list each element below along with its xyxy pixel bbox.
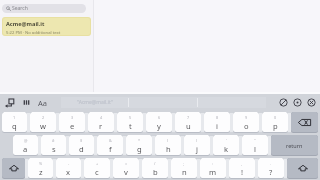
staticText: Aa: [38, 98, 47, 108]
staticText: /: [154, 161, 156, 166]
button[interactable]: return: [271, 135, 318, 155]
button[interactable]: $: [69, 135, 94, 155]
staticText: y: [157, 121, 161, 131]
staticText: +: [96, 161, 99, 166]
staticText: $: [80, 138, 83, 143]
button[interactable]: -: [56, 158, 81, 178]
staticText: 9: [245, 115, 248, 120]
button[interactable]: Dismiss keyboard: [306, 97, 317, 108]
button[interactable]: 0: [262, 112, 288, 132]
staticText: "Acme@mail.it": [77, 99, 113, 106]
button[interactable]: @: [13, 135, 38, 155]
staticText: 8: [216, 115, 219, 120]
button[interactable]: .: [258, 158, 284, 178]
button[interactable]: "Acme@mail.it": [61, 97, 128, 108]
staticText: p: [273, 121, 278, 131]
staticText: b: [153, 167, 158, 177]
button[interactable]: Hide toolbar: [278, 97, 289, 108]
button[interactable]: Settings: [292, 97, 303, 108]
button[interactable]: Shift: [2, 158, 25, 178]
button[interactable]: *: [126, 135, 152, 155]
staticText: ': [226, 138, 227, 143]
staticText: 5:22 PM · No additional text: [6, 30, 61, 36]
staticText: 6: [158, 115, 161, 120]
staticText: j: [196, 144, 198, 154]
staticText: 3: [71, 115, 74, 120]
button[interactable]: 9: [233, 112, 259, 132]
button[interactable]: :: [200, 158, 226, 178]
staticText: s: [52, 144, 56, 154]
staticText: 2: [42, 115, 45, 120]
button[interactable]: Search: [2, 4, 86, 13]
staticText: f: [109, 144, 112, 154]
staticText: return: [286, 142, 303, 149]
staticText: 5: [129, 115, 132, 120]
staticText: @: [24, 138, 28, 143]
button[interactable]: #: [41, 135, 66, 155]
staticText: o: [244, 121, 249, 131]
staticText: ;: [183, 161, 185, 166]
button[interactable]: Text formatting: [36, 97, 48, 109]
button[interactable]: /: [142, 158, 168, 178]
button[interactable]: Acme@mail.it: [2, 17, 91, 36]
staticText: x: [66, 167, 71, 177]
staticText: *: [138, 138, 141, 143]
staticText: i: [216, 121, 218, 131]
staticText: w: [40, 121, 46, 131]
staticText: %: [39, 161, 43, 166]
staticText: (: [167, 138, 169, 143]
button[interactable]: +: [84, 158, 110, 178]
staticText: g: [137, 144, 142, 154]
staticText: q: [12, 121, 17, 131]
staticText: k: [224, 144, 229, 154]
button[interactable]: ,: [229, 158, 255, 178]
staticText: ?: [269, 167, 273, 177]
staticText: l: [254, 144, 256, 154]
button[interactable]: 4: [88, 112, 114, 132]
button[interactable]: Paragraph style: [21, 97, 32, 108]
button[interactable]: 7: [175, 112, 201, 132]
button[interactable]: 6: [146, 112, 172, 132]
staticText: =: [125, 161, 128, 166]
staticText: .: [270, 161, 272, 166]
staticText: m: [209, 167, 217, 177]
staticText: 4: [100, 115, 103, 120]
staticText: r: [99, 121, 103, 131]
button[interactable]: Shift: [287, 158, 318, 178]
staticText: a: [23, 144, 28, 154]
button[interactable]: 3: [59, 112, 85, 132]
staticText: z: [39, 167, 43, 177]
staticText: 1: [13, 115, 16, 120]
staticText: :: [212, 161, 214, 166]
staticText: u: [186, 121, 191, 131]
staticText: !: [241, 167, 244, 177]
staticText: -: [68, 161, 70, 166]
button[interactable]: ": [242, 135, 268, 155]
button[interactable]: (: [155, 135, 181, 155]
button[interactable]: Undo: [4, 97, 15, 108]
button[interactable]: 8: [204, 112, 230, 132]
button[interactable]: %: [28, 158, 53, 178]
staticText: 0: [274, 115, 277, 120]
staticText: 7: [187, 115, 190, 120]
staticText: t: [129, 121, 132, 131]
staticText: e: [70, 121, 75, 131]
button[interactable]: Delete: [291, 112, 318, 132]
button[interactable]: ;: [171, 158, 197, 178]
button[interactable]: 2: [30, 112, 56, 132]
staticText: ": [254, 138, 256, 143]
staticText: Search: [12, 5, 28, 12]
staticText: n: [182, 167, 187, 177]
staticText: #: [52, 138, 55, 143]
button[interactable]: ): [184, 135, 210, 155]
button[interactable]: =: [113, 158, 139, 178]
button[interactable]: ': [213, 135, 239, 155]
button[interactable]: 1: [2, 112, 27, 132]
staticText: d: [79, 144, 84, 154]
staticText: c: [95, 167, 99, 177]
button[interactable]: &: [97, 135, 123, 155]
staticText: h: [166, 144, 171, 154]
button[interactable]: 5: [117, 112, 143, 132]
